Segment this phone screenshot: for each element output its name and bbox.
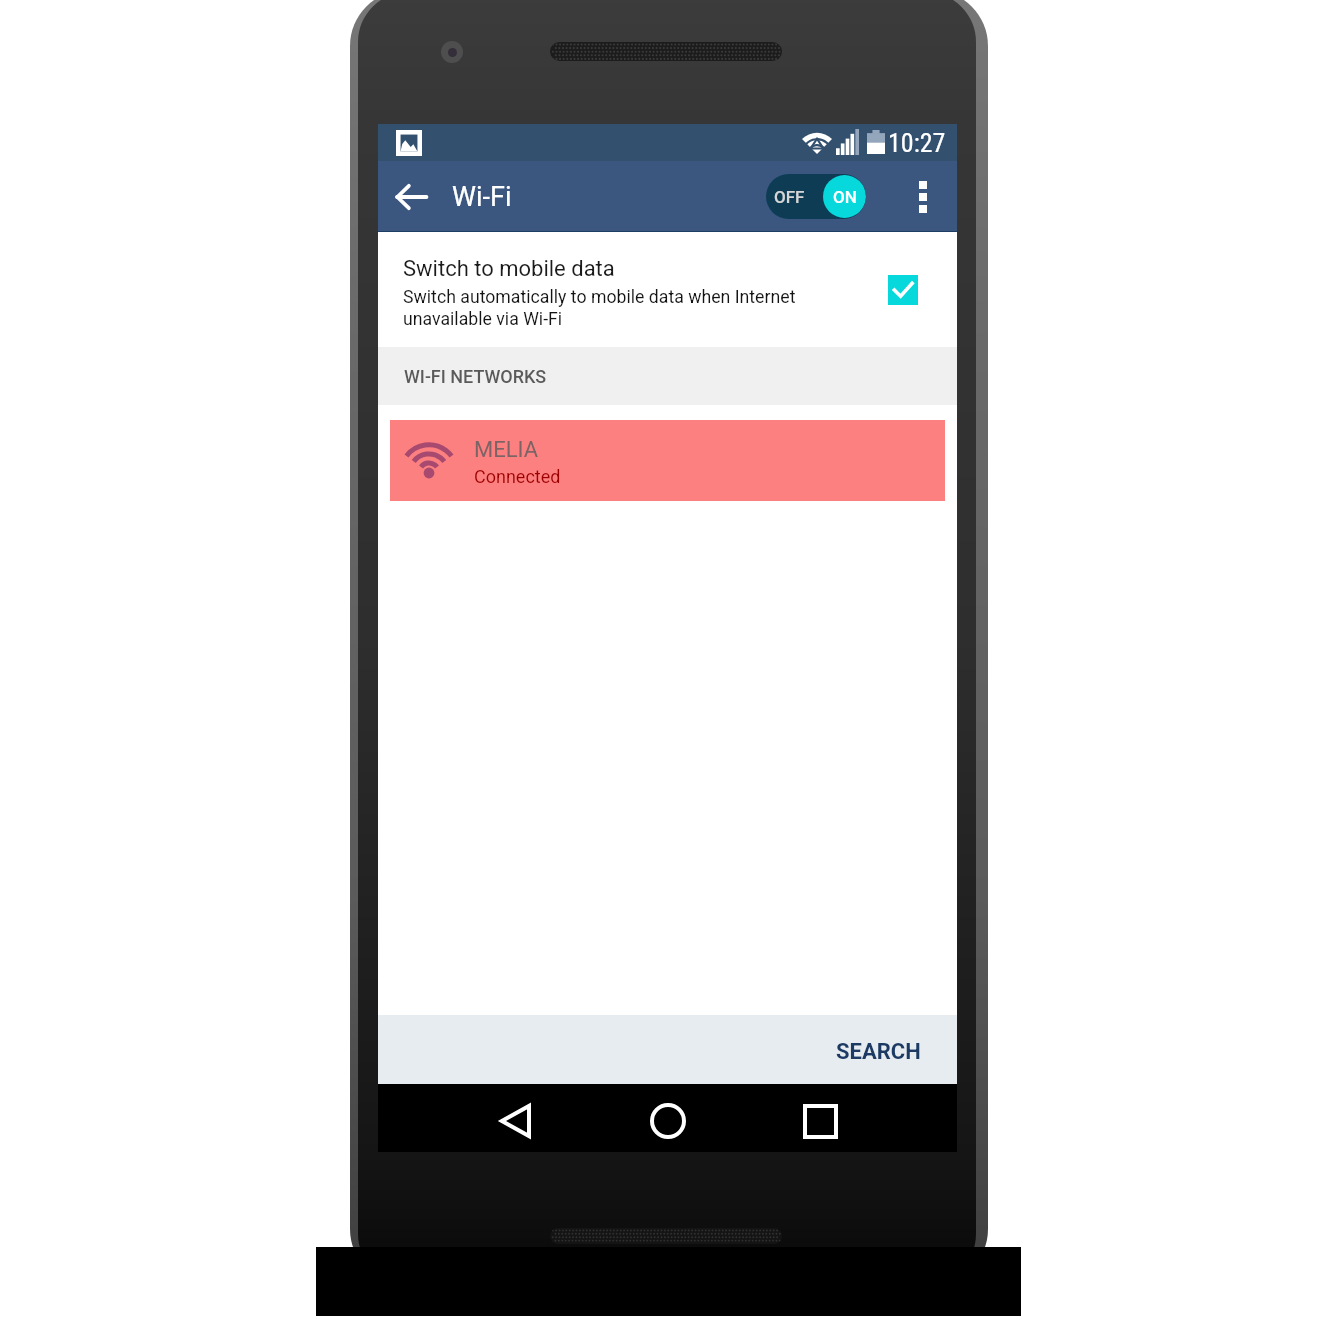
staticText: Switch automatically to mobile data when… bbox=[403, 287, 796, 329]
button[interactable]: Back bbox=[480, 1087, 549, 1155]
staticText: 10:27 bbox=[888, 128, 946, 158]
button[interactable]: More options bbox=[901, 175, 945, 219]
staticText: SEARCH bbox=[836, 1039, 921, 1065]
staticText: WI-FI NETWORKS bbox=[404, 366, 547, 387]
button[interactable]: Recents bbox=[786, 1087, 855, 1155]
button[interactable]: Home bbox=[633, 1087, 702, 1155]
button[interactable]: SEARCH bbox=[810, 1020, 957, 1079]
button[interactable]: Back bbox=[381, 169, 437, 225]
staticText: MELIA bbox=[474, 437, 539, 463]
button[interactable]: OFF bbox=[766, 174, 866, 219]
staticText: Connected bbox=[474, 466, 561, 487]
staticText: Switch to mobile data bbox=[403, 256, 615, 282]
button[interactable]: MELIA bbox=[390, 420, 945, 501]
staticText: OFF bbox=[774, 187, 805, 207]
staticText: Wi-Fi bbox=[452, 181, 512, 213]
button[interactable]: Switch to mobile data bbox=[378, 232, 957, 347]
staticText: ON bbox=[833, 187, 857, 207]
